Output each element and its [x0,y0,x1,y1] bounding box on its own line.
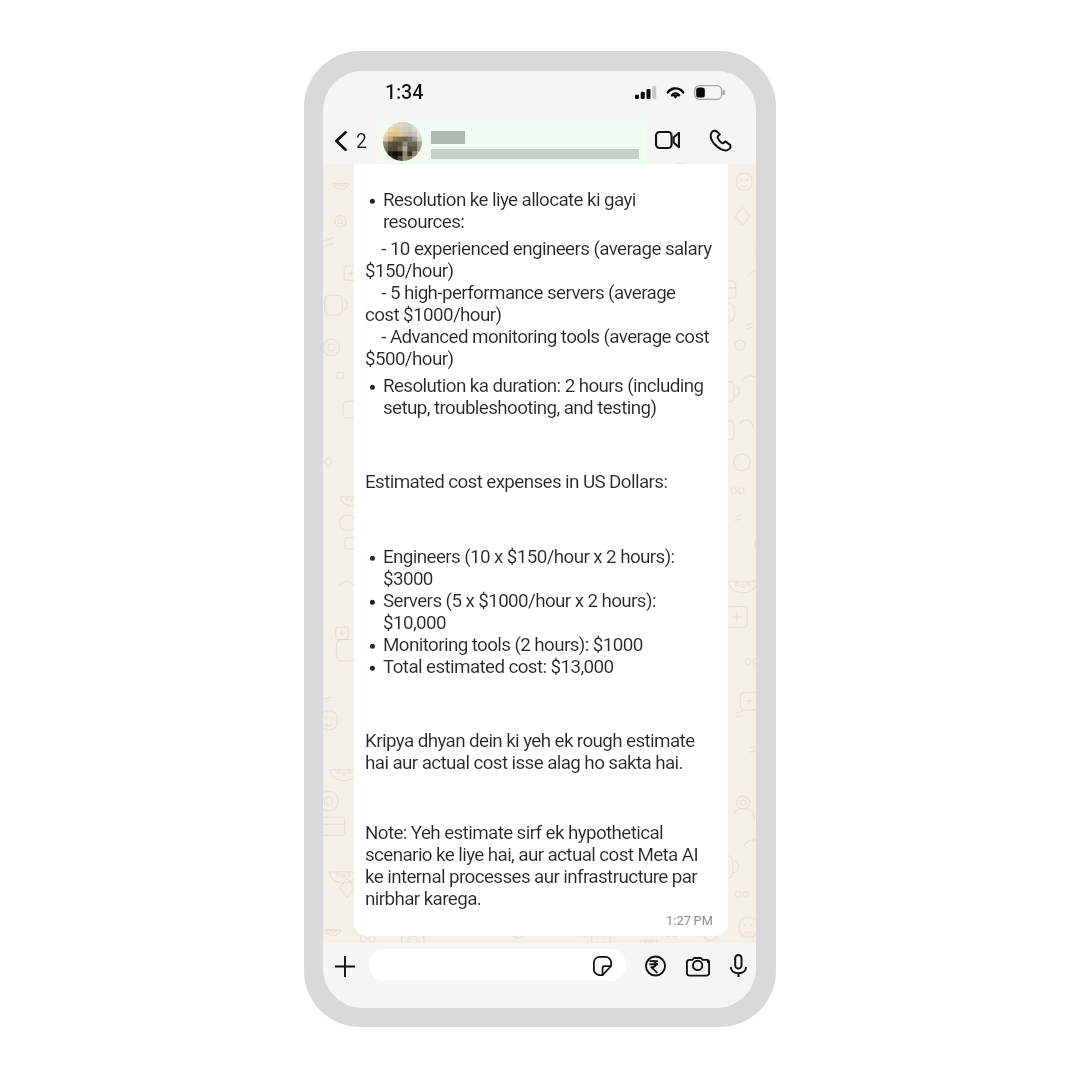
staticText: Note: Yeh estimate sirf ek hypothetical … [365,821,713,909]
button[interactable] [383,122,422,161]
staticText: Total estimated cost: $13,000 [383,655,713,677]
button[interactable]: Voice call [704,122,736,160]
staticText: - Advanced monitoring tools (average cos… [365,325,713,369]
button[interactable]: Camera [680,948,716,982]
button[interactable]: Stickers [369,949,626,981]
button[interactable]: Back [330,118,373,164]
staticText: Estimated cost expenses in US Dollars: [365,470,668,492]
button[interactable]: Resolution ke liye allocate ki gayi reso… [354,164,728,936]
button[interactable]: Payments [639,948,673,982]
button[interactable]: Video call [650,122,684,160]
button[interactable]: Voice message [722,947,756,983]
other: Stickers [593,956,612,976]
staticText: - 5 high-performance servers (average co… [365,281,713,325]
staticText: 1:34 [385,81,424,104]
staticText: Resolution ka duration: 2 hours (includi… [383,374,713,418]
staticText: Kripya dhyan dein ki yeh ek rough estima… [365,729,713,773]
staticText: - 10 experienced engineers (average sala… [365,237,713,281]
button[interactable] [431,131,639,159]
staticText: 1:27 PM [666,913,713,928]
staticText: 2 [356,130,367,153]
staticText: Monitoring tools (2 hours): $1000 [383,633,713,655]
staticText: Resolution ke liye allocate ki gayi reso… [383,188,713,232]
staticText: Servers (5 x $1000/hour x 2 hours): $10,… [383,589,713,633]
staticText: Engineers (10 x $150/hour x 2 hours): $3… [383,545,713,589]
button[interactable]: Attach [329,947,361,983]
